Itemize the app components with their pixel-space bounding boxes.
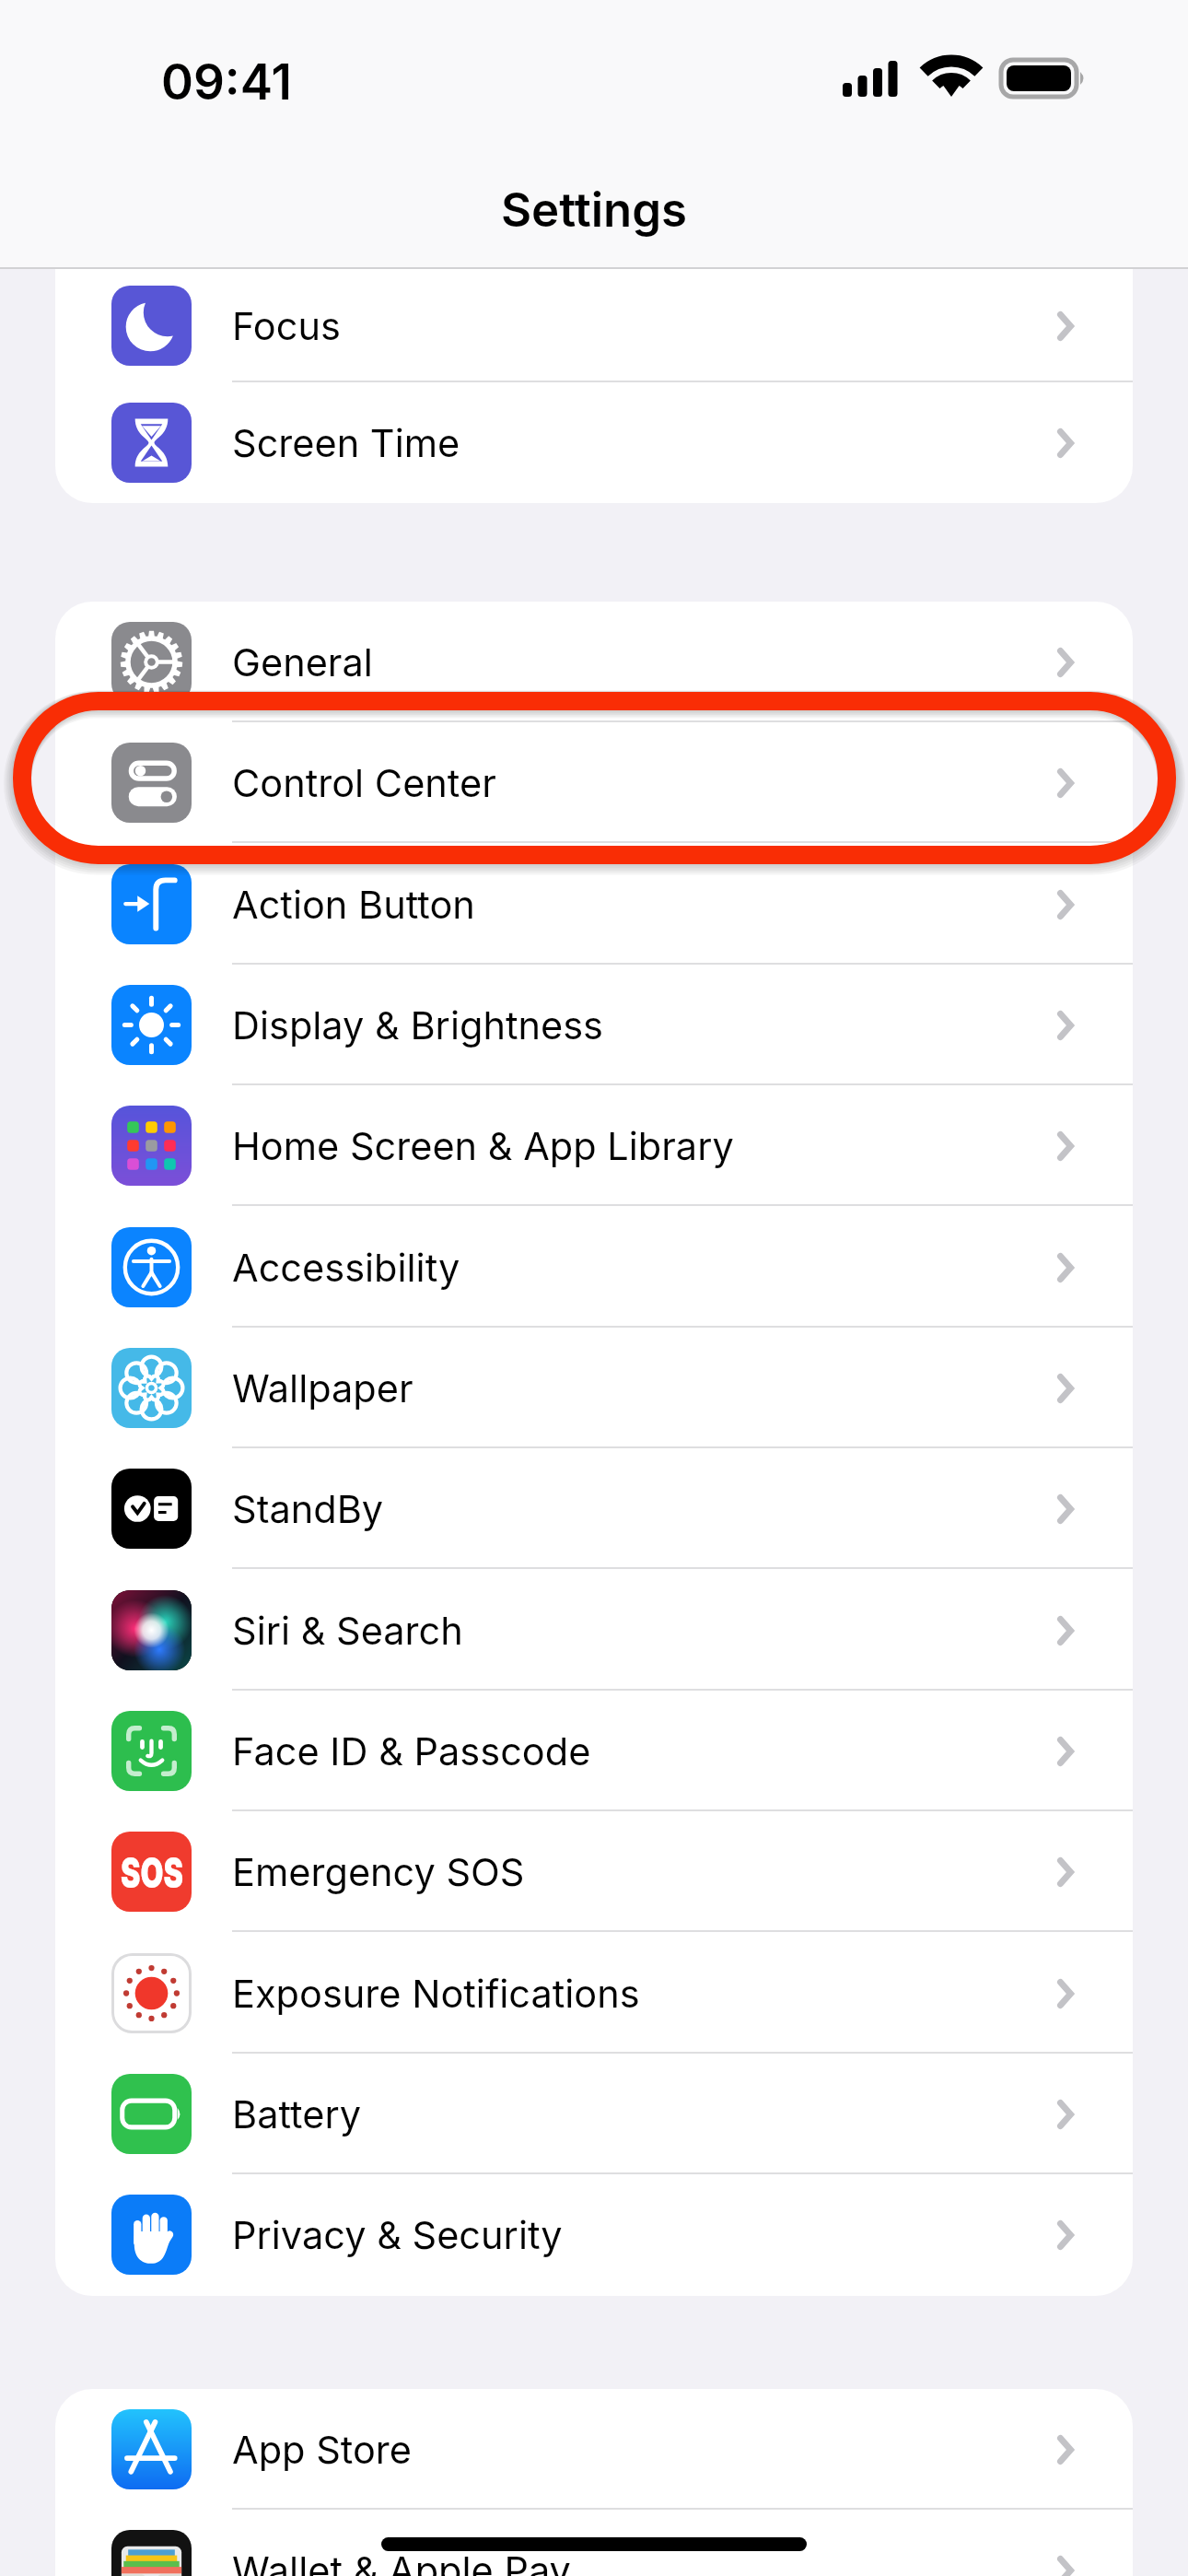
- staticText: Home Screen & App Library: [232, 1123, 734, 1169]
- staticText: Siri & Search: [232, 1608, 463, 1654]
- staticText: SOS: [87, 1847, 216, 1897]
- button[interactable]: Home Screen & App Library: [55, 1085, 1133, 1206]
- button[interactable]: Screen Time: [55, 382, 1133, 503]
- staticText: Settings: [0, 181, 1188, 239]
- button[interactable]: Face ID & Passcode: [55, 1691, 1133, 1811]
- button[interactable]: Exposure Notifications: [55, 1933, 1133, 2054]
- staticText: General: [232, 639, 373, 685]
- button[interactable]: Battery: [55, 2054, 1133, 2174]
- staticText: 09:41: [161, 53, 292, 111]
- staticText: Display & Brightness: [232, 1002, 604, 1048]
- staticText: Privacy & Security: [232, 2212, 563, 2258]
- button[interactable]: StandBy: [55, 1448, 1133, 1569]
- staticText: Control Center: [232, 760, 496, 806]
- staticText: Wallpaper: [232, 1365, 413, 1411]
- button[interactable]: Privacy & Security: [55, 2174, 1133, 2295]
- button[interactable]: Wallpaper: [55, 1328, 1133, 1448]
- staticText: StandBy: [232, 1486, 384, 1532]
- staticText: Face ID & Passcode: [232, 1728, 591, 1774]
- button[interactable]: Control Center: [55, 722, 1133, 843]
- staticText: App Store: [232, 2427, 412, 2473]
- button[interactable]: Accessibility: [55, 1207, 1133, 1328]
- button[interactable]: SOS: [55, 1811, 1133, 1932]
- staticText: Action Button: [232, 882, 475, 928]
- button[interactable]: App Store: [55, 2389, 1133, 2510]
- staticText: Wallet & Apple Pay: [232, 2547, 571, 2576]
- button[interactable]: Display & Brightness: [55, 965, 1133, 1085]
- staticText: Exposure Notifications: [232, 1971, 640, 2017]
- button[interactable]: Wallet & Apple Pay: [55, 2510, 1133, 2576]
- staticText: Emergency SOS: [232, 1849, 525, 1895]
- staticText: Focus: [232, 303, 341, 349]
- button[interactable]: Focus: [55, 269, 1133, 382]
- button[interactable]: Siri & Search: [55, 1570, 1133, 1691]
- staticText: Accessibility: [232, 1245, 460, 1291]
- button[interactable]: Action Button: [55, 844, 1133, 965]
- staticText: Screen Time: [232, 420, 460, 466]
- button[interactable]: General: [55, 602, 1133, 722]
- staticText: Battery: [232, 2091, 361, 2137]
